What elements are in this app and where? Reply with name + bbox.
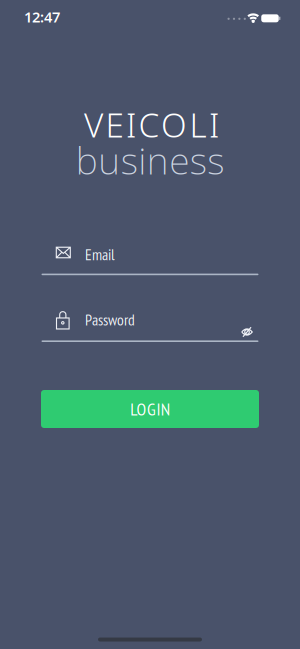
button[interactable]: Show password xyxy=(238,325,256,339)
staticText: 12:47 xyxy=(24,7,60,26)
staticText: Email xyxy=(85,244,115,265)
button[interactable]: LOGIN xyxy=(41,390,259,428)
staticText: business xyxy=(76,135,224,185)
button[interactable]: Email xyxy=(41,232,258,280)
staticText: VEICOLI xyxy=(84,102,219,147)
staticText: LOGIN xyxy=(130,398,170,420)
button[interactable]: Password xyxy=(41,299,258,347)
staticText: Password xyxy=(85,310,135,330)
